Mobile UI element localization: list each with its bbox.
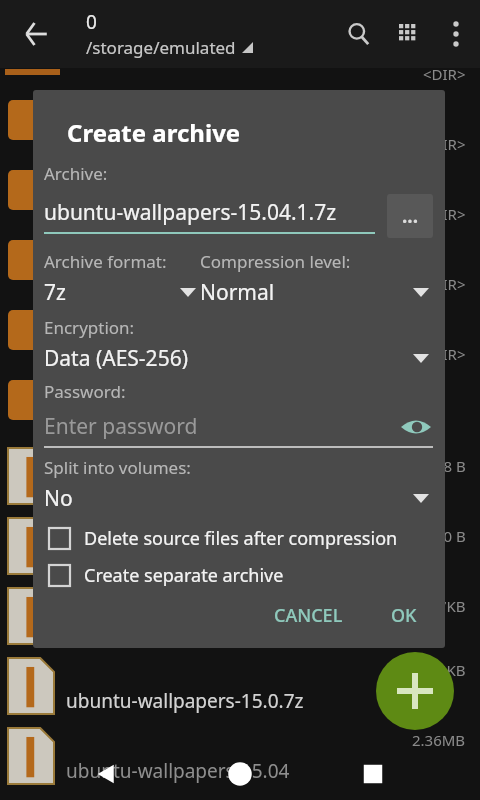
staticText: ubuntu-wallpapers-15.0.7z bbox=[66, 688, 304, 714]
button[interactable]: Back bbox=[16, 12, 60, 56]
staticText: <DIR> bbox=[423, 64, 466, 84]
button[interactable]: Create separate archive bbox=[49, 563, 445, 588]
staticText: CANCEL bbox=[274, 603, 343, 628]
staticText: Normal bbox=[200, 278, 275, 307]
staticText: 90 B bbox=[435, 526, 466, 546]
staticText: Create separate archive bbox=[84, 563, 284, 588]
button[interactable]: No bbox=[44, 484, 433, 513]
button[interactable]: ubuntu-wallpapers-15.04.1.7z bbox=[44, 198, 375, 234]
staticText: OK bbox=[391, 603, 417, 628]
staticText: ubuntu-wallpapers-15.04.1.7z bbox=[44, 198, 337, 227]
staticText: Delete source files after compression bbox=[84, 526, 398, 551]
staticText: 18 B bbox=[435, 456, 466, 476]
staticText: ubuntu-wallpapers-15.04 bbox=[66, 758, 290, 784]
button[interactable]: Delete source files after compression bbox=[49, 526, 445, 551]
button[interactable]: 7z bbox=[44, 278, 200, 307]
staticText: 2.36MB bbox=[412, 730, 466, 750]
staticText: Create archive bbox=[67, 116, 241, 149]
staticText: Compression level: bbox=[200, 250, 351, 273]
button[interactable]: Back bbox=[86, 753, 128, 795]
button[interactable]: More options bbox=[434, 12, 478, 56]
button[interactable]: Enter password bbox=[44, 412, 399, 441]
staticText: 7KB bbox=[438, 596, 466, 616]
button[interactable]: Normal bbox=[200, 278, 433, 307]
button[interactable]: OK bbox=[379, 595, 429, 636]
staticText: ... bbox=[402, 203, 419, 229]
staticText: Enter password bbox=[44, 412, 198, 441]
button[interactable]: Add bbox=[376, 652, 454, 730]
button[interactable]: Home bbox=[219, 753, 261, 795]
staticText: Split into volumes: bbox=[44, 456, 191, 479]
button[interactable]: Browse bbox=[387, 194, 433, 238]
staticText: /storage/emulated bbox=[86, 36, 236, 59]
staticText: 7z bbox=[44, 278, 66, 307]
button[interactable]: Show password bbox=[399, 414, 433, 440]
button[interactable]: Data (AES-256) bbox=[44, 344, 433, 373]
staticText: Data (AES-256) bbox=[44, 344, 188, 373]
staticText: No bbox=[44, 484, 73, 513]
staticText: <DIR> bbox=[423, 204, 466, 224]
staticText: <DIR> bbox=[423, 344, 466, 364]
staticText: 0 bbox=[86, 9, 97, 35]
staticText: 4KB bbox=[438, 660, 466, 680]
button[interactable]: Recents bbox=[352, 753, 394, 795]
staticText: Archive: bbox=[44, 162, 108, 185]
staticText: <DIR> bbox=[423, 134, 466, 154]
staticText: Password: bbox=[44, 380, 126, 403]
staticText: Archive format: bbox=[44, 250, 167, 273]
button[interactable]: Search bbox=[334, 9, 384, 59]
staticText: Encryption: bbox=[44, 316, 135, 339]
button[interactable]: Grid view bbox=[384, 9, 434, 59]
staticText: <DIR> bbox=[423, 274, 466, 294]
button[interactable]: CANCEL bbox=[262, 595, 355, 636]
